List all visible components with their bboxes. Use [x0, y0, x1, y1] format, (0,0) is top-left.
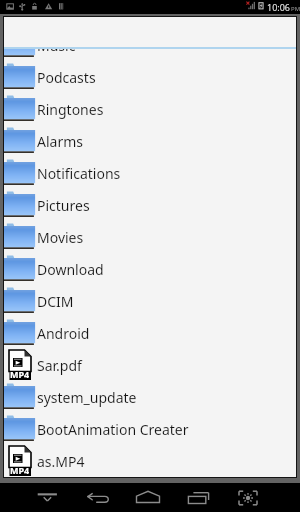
button[interactable]: Recent apps [174, 483, 222, 512]
button[interactable]: Pictures [4, 189, 296, 221]
staticText: 10:06 [267, 1, 291, 13]
button[interactable]: Movies [4, 221, 296, 253]
button[interactable]: system_update [4, 381, 296, 413]
staticText: BootAnimation Creater [37, 420, 189, 439]
button[interactable]: Android [4, 317, 296, 349]
button[interactable]: Ringtones [4, 93, 296, 125]
staticText: Ringtones [37, 100, 104, 119]
staticText: as.MP4 [37, 452, 85, 471]
staticText: Notifications [37, 164, 121, 183]
staticText: MP4 [10, 464, 30, 476]
button[interactable]: MP4 [4, 349, 296, 381]
staticText: Android [37, 324, 90, 343]
button[interactable]: Back [74, 483, 122, 512]
button[interactable]: MP4 [4, 445, 296, 477]
staticText: Movies [37, 228, 84, 247]
button[interactable]: DCIM [4, 285, 296, 317]
button[interactable]: BootAnimation Creater [4, 413, 296, 445]
staticText: MP4 [10, 368, 30, 380]
staticText: Alarms [37, 132, 83, 151]
staticText: system_update [37, 388, 137, 407]
button[interactable]: Podcasts [4, 61, 296, 93]
staticText: Music [37, 47, 76, 55]
staticText: DCIM [37, 292, 74, 311]
staticText: Podcasts [37, 68, 96, 87]
button[interactable]: Alarms [4, 125, 296, 157]
staticText: Download [37, 260, 104, 279]
button[interactable]: Music [4, 47, 296, 61]
staticText: Pictures [37, 196, 90, 215]
button[interactable]: Download [4, 253, 296, 285]
staticText: Sar.pdf [37, 356, 82, 375]
button[interactable]: Notifications [4, 157, 296, 189]
button[interactable]: Home [124, 483, 172, 512]
button[interactable]: Hide keyboard [24, 483, 72, 512]
button[interactable]: Screenshot [224, 483, 272, 512]
staticText: PM [291, 5, 300, 13]
